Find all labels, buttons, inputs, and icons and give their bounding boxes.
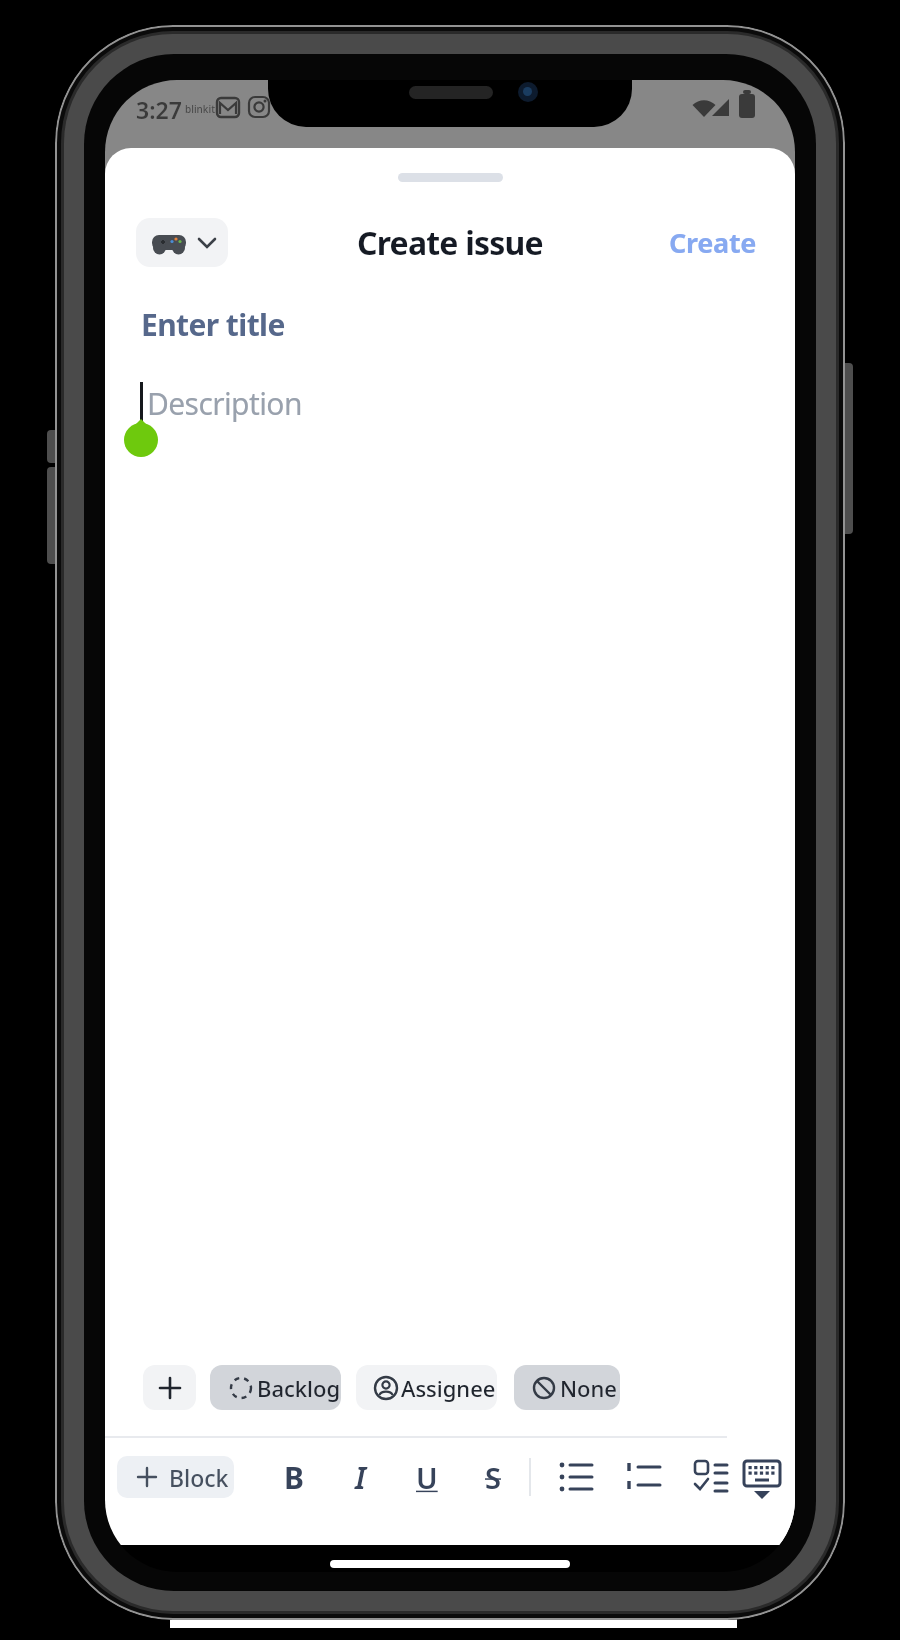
- button[interactable]: I: [338, 1455, 382, 1499]
- staticText: S: [485, 1458, 501, 1497]
- button[interactable]: None: [514, 1365, 620, 1410]
- staticText: I: [355, 1457, 366, 1498]
- staticText: Backlog: [257, 1373, 341, 1403]
- staticText: Enter title: [141, 304, 285, 345]
- button[interactable]: [735, 1452, 789, 1502]
- button[interactable]: [143, 1365, 196, 1410]
- button[interactable]: U: [405, 1455, 449, 1499]
- staticText: blinkit: [185, 102, 215, 116]
- button[interactable]: [622, 1455, 666, 1499]
- staticText: Assignee: [401, 1373, 496, 1403]
- button[interactable]: [136, 218, 228, 267]
- button[interactable]: Create: [635, 222, 757, 262]
- button[interactable]: Block: [117, 1456, 234, 1498]
- staticText: None: [560, 1373, 617, 1403]
- button[interactable]: [689, 1455, 733, 1499]
- button[interactable]: Assignee: [356, 1365, 497, 1410]
- button[interactable]: [554, 1455, 598, 1499]
- staticText: 3:27: [136, 94, 182, 125]
- staticText: Create issue: [357, 221, 543, 265]
- button[interactable]: S: [471, 1455, 515, 1499]
- staticText: Block: [169, 1462, 229, 1493]
- button[interactable]: Backlog: [210, 1365, 341, 1410]
- staticText: U: [416, 1458, 438, 1497]
- button[interactable]: B: [272, 1455, 316, 1499]
- staticText: Description: [147, 383, 302, 424]
- staticText: B: [284, 1457, 304, 1498]
- staticText: Create: [669, 224, 757, 261]
